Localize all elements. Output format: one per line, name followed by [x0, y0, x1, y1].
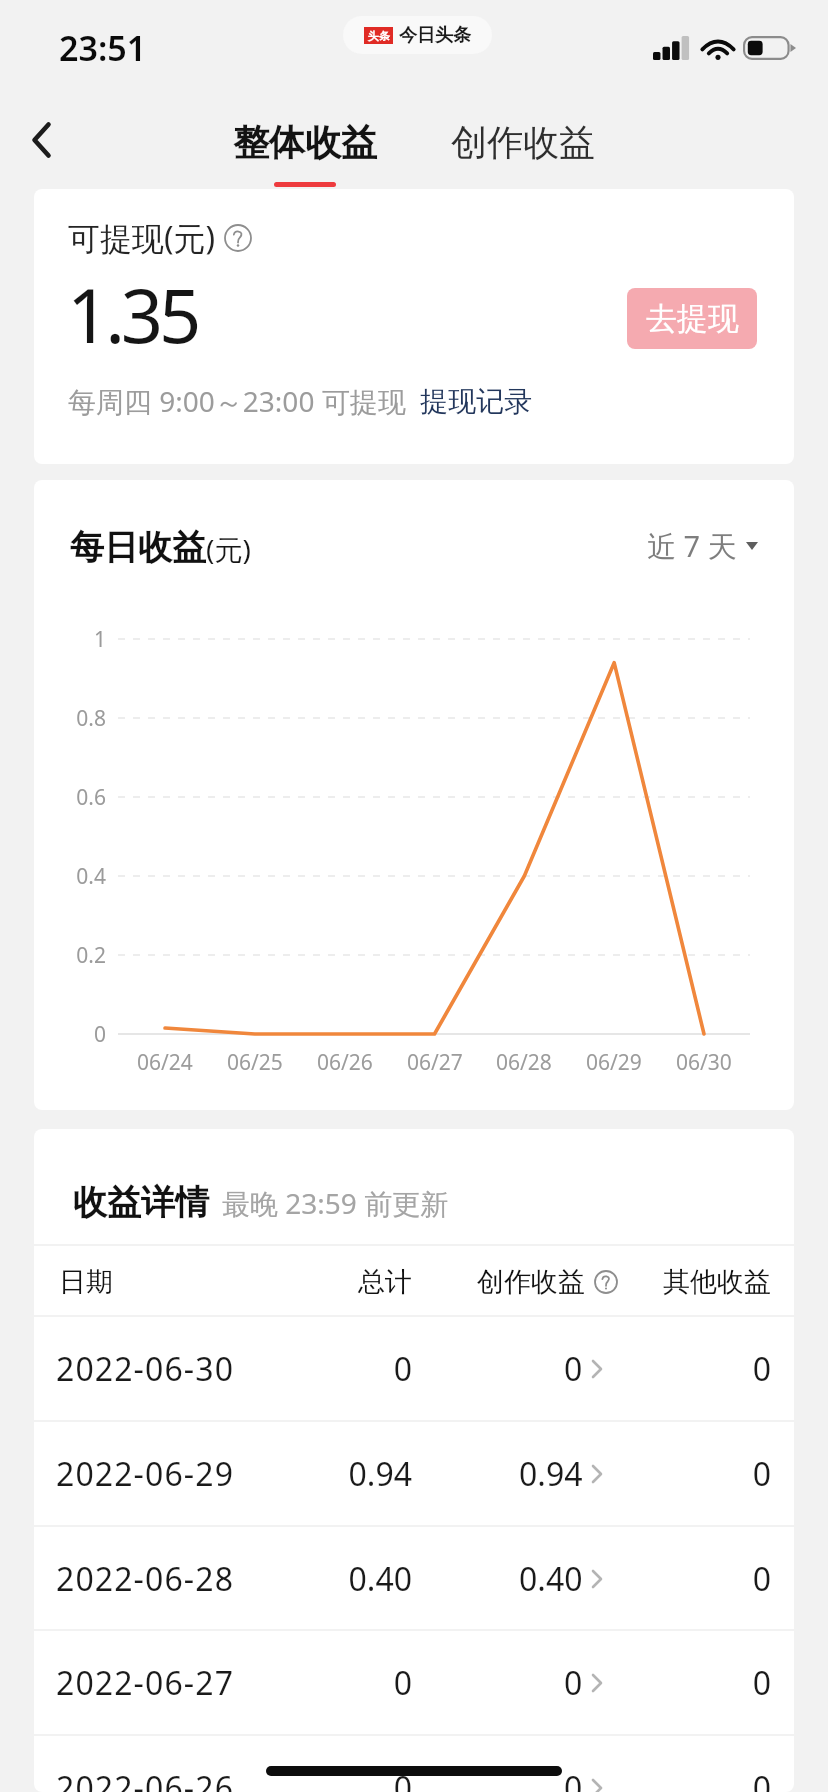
staticText: 0 — [571, 1661, 771, 1705]
staticText: 23:51 — [59, 25, 147, 71]
button[interactable]: 近 7 天 — [637, 522, 768, 570]
staticText: 日期 — [59, 1265, 113, 1299]
staticText: 0.4 — [34, 862, 106, 891]
button[interactable]: 2022-06-27 — [34, 1631, 794, 1734]
button[interactable]: Back — [13, 112, 69, 168]
staticText: 0.94 — [212, 1452, 412, 1496]
staticText: 收益详情 — [73, 1181, 209, 1224]
staticText: 06/27 — [407, 1048, 463, 1077]
staticText: 1.35 — [67, 264, 198, 365]
staticText: 去提现 — [646, 299, 739, 338]
staticText: 06/24 — [137, 1048, 193, 1077]
button[interactable]: About withdrawable balance — [224, 224, 252, 252]
button[interactable]: 整体收益 — [213, 98, 397, 197]
staticText: 0.94 — [519, 1452, 583, 1496]
staticText: 06/30 — [676, 1048, 732, 1077]
staticText: 0 — [564, 1661, 583, 1705]
staticText: 2022-06-26 — [56, 1766, 235, 1792]
staticText: 其他收益 — [571, 1265, 771, 1299]
button[interactable]: 创作收益 — [431, 98, 615, 175]
staticText: 今日头条 — [399, 24, 471, 47]
staticText: 06/25 — [227, 1048, 283, 1077]
staticText: 0 — [571, 1452, 771, 1496]
staticText: 整体收益 — [233, 120, 377, 165]
staticText: 0 — [571, 1766, 771, 1792]
staticText: 最晚 23:59 前更新 — [222, 1184, 449, 1222]
button[interactable]: 2022-06-28 — [34, 1527, 794, 1630]
staticText: 0.2 — [34, 941, 106, 970]
button[interactable]: 2022-06-26 — [34, 1736, 794, 1792]
staticText: 2022-06-29 — [56, 1452, 235, 1496]
staticText: 创作收益 — [477, 1265, 585, 1299]
staticText: 可提现(元) — [68, 216, 216, 260]
staticText: 头条 — [368, 29, 390, 43]
staticText: 06/28 — [496, 1048, 552, 1077]
button[interactable]: 2022-06-29 — [34, 1422, 794, 1525]
staticText: 2022-06-30 — [56, 1347, 235, 1391]
staticText: 0 — [564, 1347, 583, 1391]
staticText: 2022-06-28 — [56, 1557, 235, 1601]
staticText: 每日收益 — [70, 526, 206, 569]
staticText: 0 — [571, 1557, 771, 1601]
staticText: 06/26 — [317, 1048, 373, 1077]
staticText: 每周四 9:00～23:00 可提现 — [68, 382, 406, 420]
button[interactable]: 去提现 — [627, 288, 757, 349]
staticText: 总计 — [212, 1265, 412, 1299]
staticText: 0 — [212, 1347, 412, 1391]
button[interactable]: 2022-06-30 — [34, 1317, 794, 1420]
staticText: 1 — [34, 625, 106, 654]
staticText: 0.8 — [34, 704, 106, 733]
button[interactable]: About creation earnings — [594, 1270, 618, 1294]
staticText: 0 — [212, 1661, 412, 1705]
button[interactable]: 提现记录 — [420, 384, 532, 419]
staticText: (元) — [206, 530, 251, 568]
staticText: 2022-06-27 — [56, 1661, 235, 1705]
staticText: 0.40 — [519, 1557, 583, 1601]
staticText: 0.6 — [34, 783, 106, 812]
staticText: 0 — [571, 1347, 771, 1391]
staticText: 0 — [34, 1020, 106, 1049]
staticText: 0 — [212, 1766, 412, 1792]
staticText: 0.40 — [212, 1557, 412, 1601]
staticText: 0 — [564, 1766, 583, 1792]
staticText: 创作收益 — [451, 120, 595, 165]
staticText: 06/29 — [586, 1048, 642, 1077]
staticText: 近 7 天 — [647, 526, 737, 566]
